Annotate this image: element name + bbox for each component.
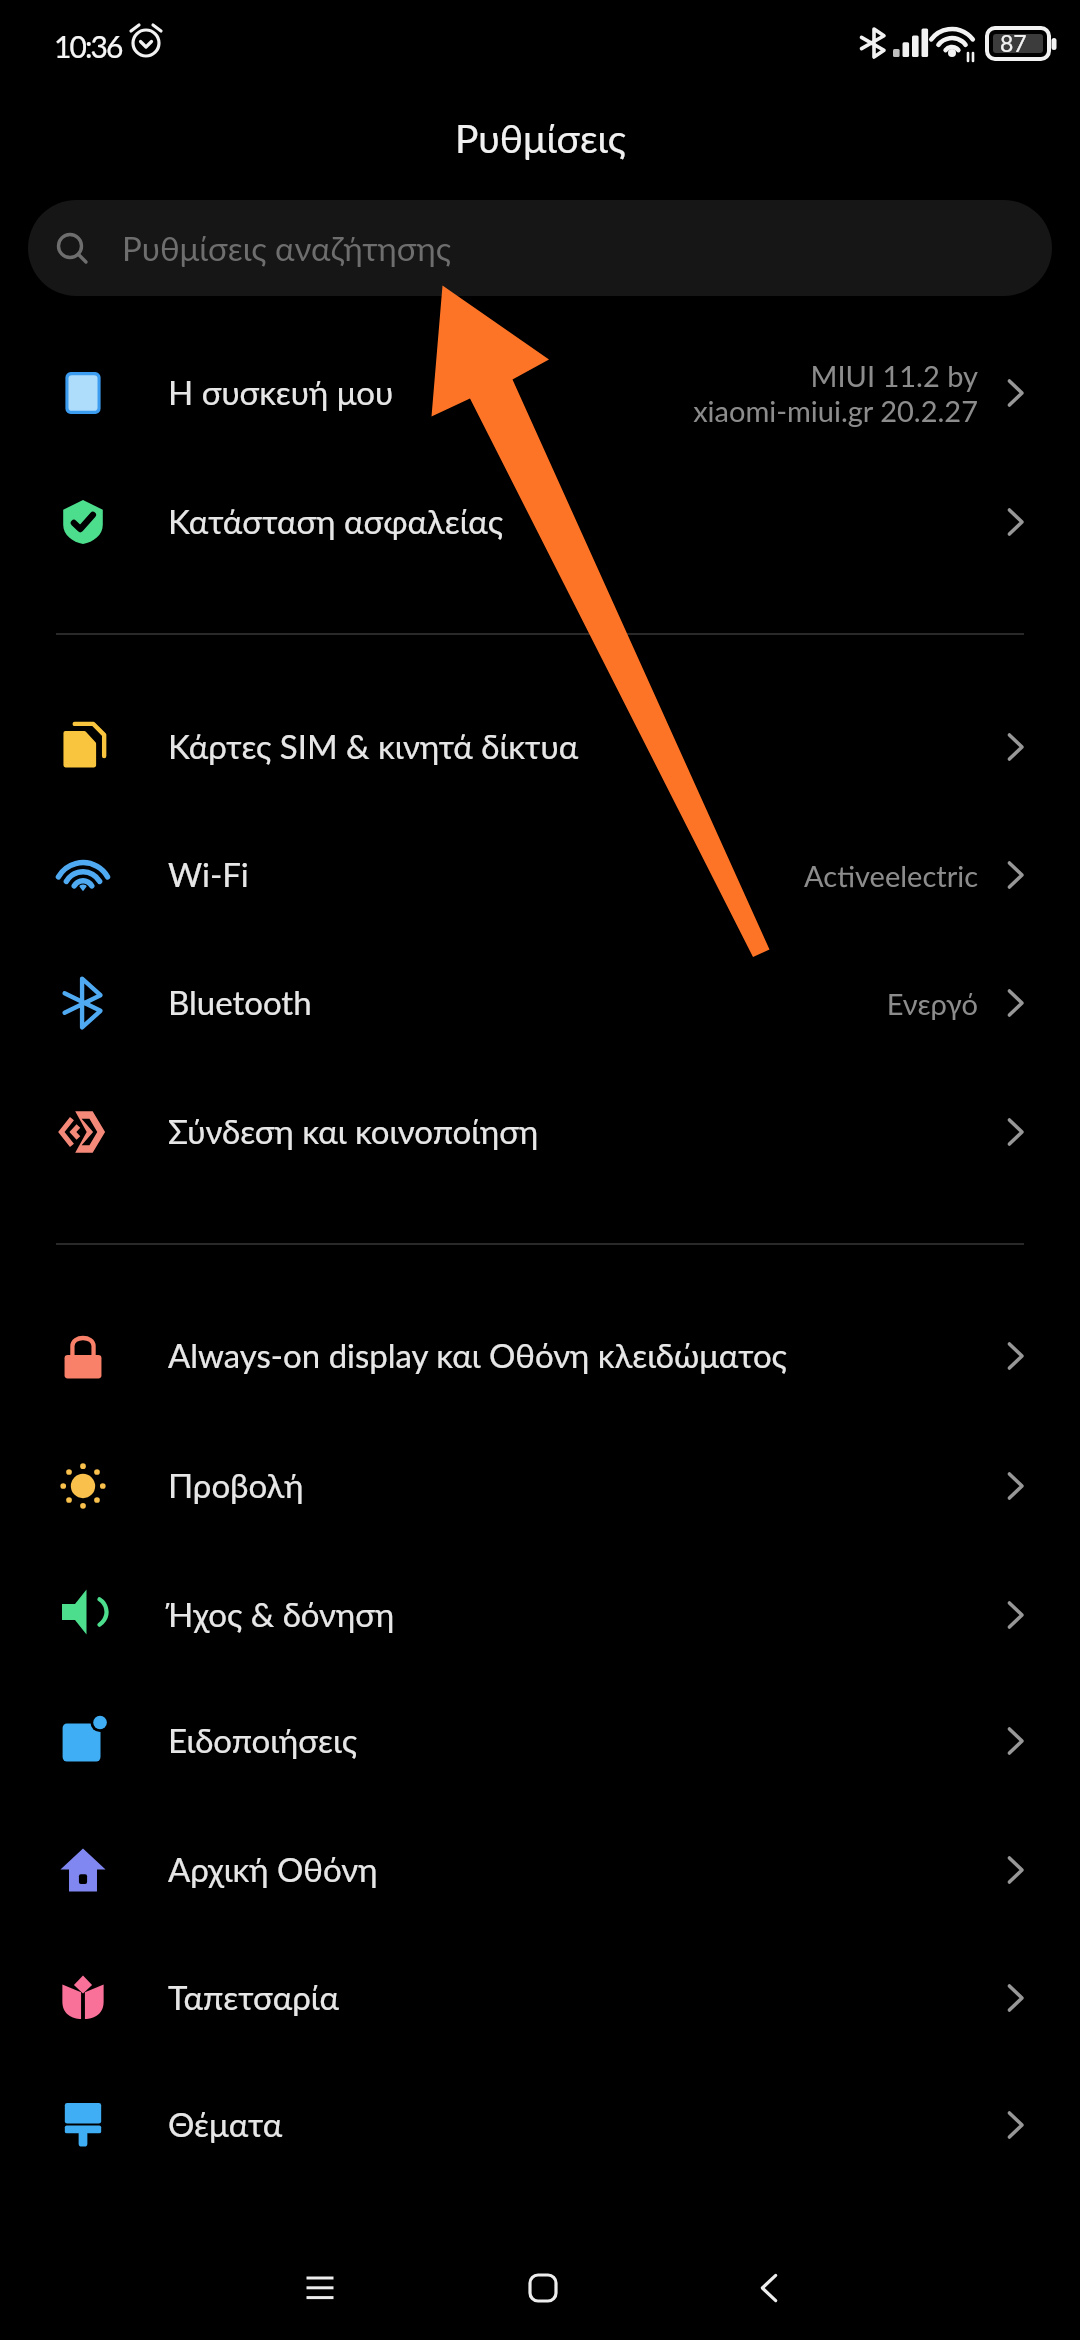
- staticText: Activeelectric: [804, 858, 978, 893]
- staticText: Bluetooth: [168, 982, 312, 1022]
- staticText: 87: [1000, 29, 1027, 57]
- staticText: Wi-Fi: [168, 854, 249, 894]
- button[interactable]: Αρχική Οθόνη: [0, 1815, 1080, 1925]
- button[interactable]: Always-on display και Οθόνη κλειδώματος: [0, 1301, 1080, 1411]
- button[interactable]: Back: [709, 2233, 829, 2340]
- button[interactable]: Προβολή: [0, 1431, 1080, 1541]
- button[interactable]: Θέματα: [0, 2070, 1080, 2180]
- staticText: Θέματα: [168, 2104, 283, 2144]
- staticText: Ταπετσαρία: [168, 1977, 339, 2017]
- button[interactable]: Home: [483, 2233, 603, 2340]
- staticText: MIUI 11.2 by: [810, 358, 978, 393]
- button[interactable]: Ταπετσαρία: [0, 1943, 1080, 2053]
- button[interactable]: Ήχος & δόνηση: [0, 1560, 1080, 1670]
- button[interactable]: Σύνδεση και κοινοποίηση: [0, 1077, 1080, 1187]
- button[interactable]: Ρυθμίσεις αναζήτησης: [28, 200, 1052, 296]
- button[interactable]: Recents: [260, 2233, 380, 2340]
- staticText: Η συσκευή μου: [168, 372, 394, 412]
- button[interactable]: Bluetooth: [0, 948, 1080, 1058]
- button[interactable]: Ειδοποιήσεις: [0, 1686, 1080, 1796]
- staticText: Ρυθμίσεις: [455, 115, 626, 162]
- staticText: Ρυθμίσεις αναζήτησης: [122, 228, 452, 268]
- staticText: Ειδοποιήσεις: [168, 1720, 357, 1760]
- staticText: Σύνδεση και κοινοποίηση: [168, 1111, 539, 1151]
- staticText: Κατάσταση ασφαλείας: [168, 501, 504, 541]
- button[interactable]: Κάρτες SIM & κινητά δίκτυα: [0, 692, 1080, 802]
- staticText: Προβολή: [168, 1465, 304, 1505]
- button[interactable]: Wi-Fi: [0, 820, 1080, 930]
- staticText: Ήχος & δόνηση: [168, 1594, 395, 1634]
- staticText: 10:36: [54, 28, 122, 64]
- staticText: Ενεργό: [886, 986, 978, 1021]
- staticText: Always-on display και Οθόνη κλειδώματος: [168, 1335, 787, 1375]
- staticText: Αρχική Οθόνη: [168, 1849, 378, 1889]
- button[interactable]: Η συσκευή μου: [0, 338, 1080, 448]
- button[interactable]: Κατάσταση ασφαλείας: [0, 467, 1080, 577]
- staticText: Κάρτες SIM & κινητά δίκτυα: [168, 726, 579, 766]
- staticText: xiaomi-miui.gr 20.2.27: [693, 393, 978, 428]
